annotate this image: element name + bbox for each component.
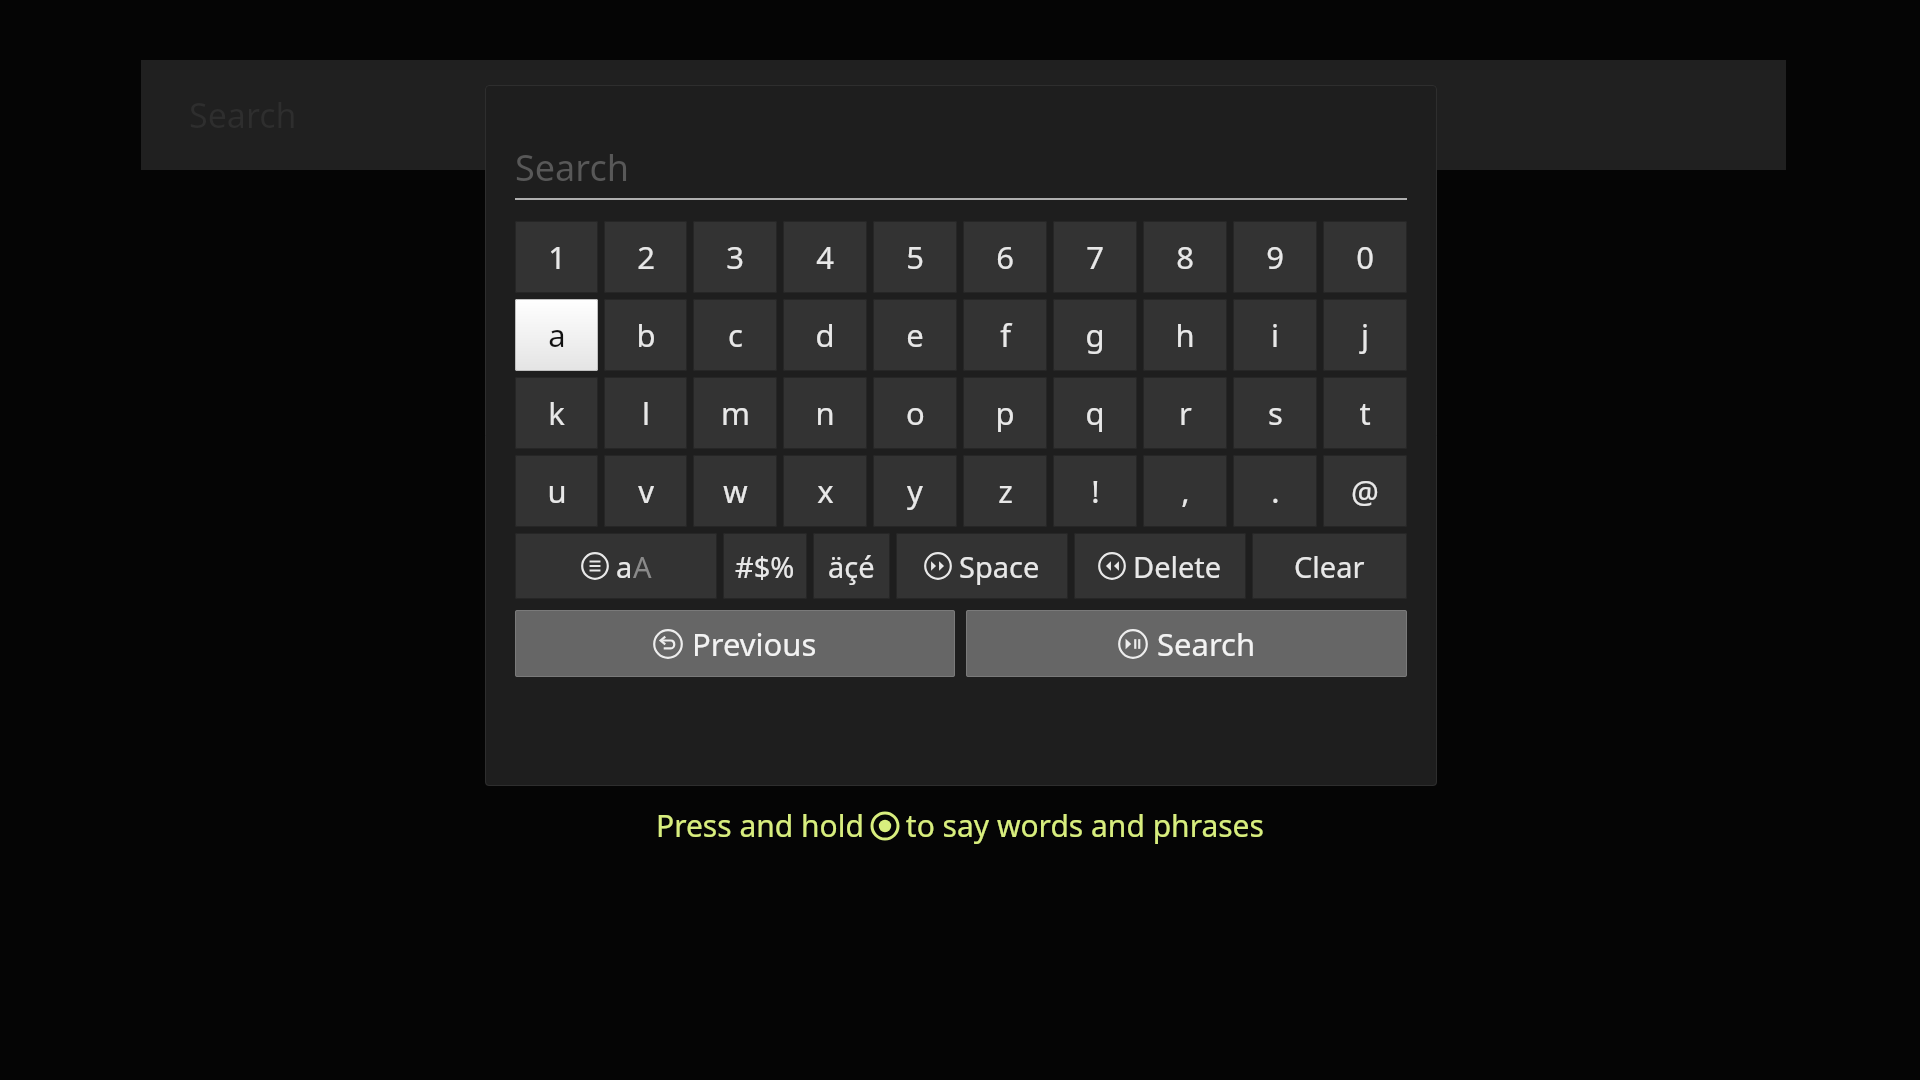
button[interactable]: 8 (1143, 221, 1227, 293)
staticText: p (995, 392, 1015, 434)
button[interactable]: 9 (1233, 221, 1317, 293)
button[interactable]: n (783, 377, 867, 449)
staticText: l (642, 392, 650, 434)
staticText: e (906, 314, 924, 356)
button[interactable]: key (813, 533, 890, 599)
button[interactable]: h (1143, 299, 1227, 371)
staticText: 5 (906, 236, 924, 278)
button[interactable]: v (604, 455, 687, 527)
staticText: a (548, 314, 566, 356)
button[interactable]: z (963, 455, 1047, 527)
staticText: 4 (816, 236, 834, 278)
staticText: k (548, 392, 565, 434)
button[interactable]: key (1252, 533, 1407, 599)
staticText: Space (959, 547, 1040, 586)
button[interactable]: Previous (515, 610, 955, 677)
button[interactable]: key (515, 533, 717, 599)
button[interactable]: 2 (604, 221, 687, 293)
staticText: Delete (1133, 547, 1222, 586)
staticText: 1 (548, 236, 566, 278)
button[interactable]: g (1053, 299, 1137, 371)
staticText: Press and hold (656, 805, 872, 846)
button[interactable]: p (963, 377, 1047, 449)
staticText: o (906, 392, 925, 434)
staticText: f (1000, 314, 1011, 356)
button[interactable]: b (604, 299, 687, 371)
button[interactable]: ! (1053, 455, 1137, 527)
button[interactable]: key (896, 533, 1068, 599)
staticText: n (815, 392, 835, 434)
button[interactable]: , (1143, 455, 1227, 527)
button[interactable]: a (515, 299, 598, 371)
staticText: r (1179, 392, 1192, 434)
staticText: Search (189, 92, 297, 138)
button[interactable]: x (783, 455, 867, 527)
button[interactable]: y (873, 455, 957, 527)
staticText: t (1359, 392, 1371, 434)
button[interactable]: 0 (1323, 221, 1407, 293)
button[interactable]: e (873, 299, 957, 371)
staticText: 3 (726, 236, 744, 278)
button[interactable]: r (1143, 377, 1227, 449)
staticText: m (721, 392, 750, 434)
staticText: g (1085, 314, 1105, 356)
button[interactable]: m (693, 377, 777, 449)
staticText: j (1361, 314, 1369, 356)
button[interactable]: 6 (963, 221, 1047, 293)
staticText: ! (1091, 470, 1100, 512)
button[interactable]: 4 (783, 221, 867, 293)
button[interactable]: Search (515, 143, 1407, 200)
staticText: 9 (1266, 236, 1284, 278)
button[interactable]: i (1233, 299, 1317, 371)
button[interactable]: Search (966, 610, 1407, 677)
button[interactable]: q (1053, 377, 1137, 449)
button[interactable]: 7 (1053, 221, 1137, 293)
button[interactable]: j (1323, 299, 1407, 371)
staticText: Clear (1294, 547, 1365, 586)
staticText: z (998, 470, 1013, 512)
button[interactable]: key (723, 533, 807, 599)
staticText: Search (1157, 623, 1256, 665)
staticText: s (1268, 392, 1283, 434)
staticText: h (1175, 314, 1195, 356)
staticText: . (1271, 470, 1280, 512)
staticText: Search (515, 143, 629, 192)
button[interactable]: Search (141, 60, 1786, 170)
button[interactable]: s (1233, 377, 1317, 449)
button[interactable]: f (963, 299, 1047, 371)
staticText: @ (1351, 470, 1379, 512)
staticText: a (616, 547, 633, 586)
button[interactable]: 3 (693, 221, 777, 293)
other: Microphone (872, 813, 898, 839)
button[interactable]: c (693, 299, 777, 371)
button[interactable]: @ (1323, 455, 1407, 527)
button[interactable]: 1 (515, 221, 598, 293)
staticText: Previous (692, 623, 817, 665)
staticText: x (817, 470, 834, 512)
staticText: #$% (735, 547, 795, 586)
staticText: , (1181, 470, 1190, 512)
staticText: v (638, 470, 654, 512)
staticText: d (815, 314, 835, 356)
button[interactable]: 5 (873, 221, 957, 293)
staticText: 0 (1356, 236, 1374, 278)
staticText: b (636, 314, 656, 356)
staticText: q (1085, 392, 1105, 434)
staticText: to say words and phrases (898, 805, 1264, 846)
button[interactable]: t (1323, 377, 1407, 449)
staticText: 7 (1086, 236, 1104, 278)
button[interactable]: w (693, 455, 777, 527)
button[interactable]: d (783, 299, 867, 371)
staticText: 8 (1176, 236, 1194, 278)
staticText: i (1271, 314, 1279, 356)
button[interactable]: . (1233, 455, 1317, 527)
button[interactable]: key (1074, 533, 1246, 599)
button[interactable]: l (604, 377, 687, 449)
staticText: 6 (996, 236, 1014, 278)
staticText: A (633, 547, 652, 586)
staticText: y (907, 470, 923, 512)
button[interactable]: o (873, 377, 957, 449)
button[interactable]: u (515, 455, 598, 527)
staticText: c (728, 314, 743, 356)
button[interactable]: k (515, 377, 598, 449)
